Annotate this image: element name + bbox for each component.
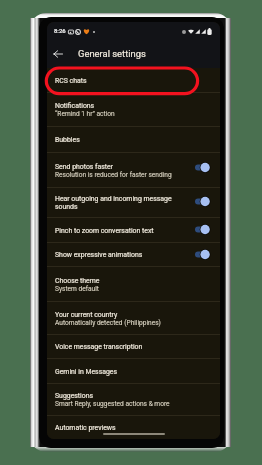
- button[interactable]: Toggle: [195, 249, 210, 260]
- button[interactable]: Pinch to zoom conversation text: [47, 218, 220, 243]
- button[interactable]: Send photos faster: [47, 153, 220, 188]
- button[interactable]: Automatic previews: [47, 416, 220, 439]
- staticText: Gemini in Messages: [55, 368, 118, 376]
- staticText: Bubbles: [55, 136, 80, 144]
- button[interactable]: Your current country: [47, 302, 220, 335]
- staticText: Voice message transcription: [55, 343, 143, 351]
- button[interactable]: RCS chats: [47, 68, 220, 93]
- button[interactable]: Notifications: [47, 93, 220, 127]
- button[interactable]: Show expressive animations: [47, 243, 220, 267]
- button[interactable]: Suggestions: [47, 384, 220, 416]
- button[interactable]: Choose theme: [47, 267, 220, 302]
- staticText: Pinch to zoom conversation text: [55, 227, 154, 235]
- staticText: Hear outgoing and incoming message sound…: [55, 195, 192, 211]
- button[interactable]: Toggle: [195, 162, 210, 173]
- staticText: Show expressive animations: [55, 251, 143, 259]
- staticText: Automatically detected (Philippines): [55, 319, 161, 327]
- button[interactable]: Gemini in Messages: [47, 359, 220, 384]
- staticText: Suggestions: [55, 392, 94, 400]
- staticText: RCS chats: [55, 77, 87, 85]
- staticText: Resolution is reduced for faster sending: [55, 171, 172, 179]
- staticText: System default: [55, 285, 99, 293]
- button[interactable]: Bubbles: [47, 127, 220, 153]
- button[interactable]: Toggle: [195, 224, 210, 235]
- staticText: Automatic previews: [55, 424, 116, 432]
- staticText: Smart Reply, suggested actions & more: [55, 400, 170, 408]
- button[interactable]: Voice message transcription: [47, 335, 220, 359]
- staticText: Your current country: [55, 311, 118, 319]
- staticText: Send photos faster: [55, 163, 114, 171]
- staticText: Choose theme: [55, 277, 100, 285]
- button[interactable]: Hear outgoing and incoming message sound…: [47, 188, 220, 218]
- button[interactable]: Toggle: [195, 196, 210, 207]
- staticText: General settings: [78, 48, 146, 59]
- staticText: 8:26: [54, 28, 66, 35]
- button[interactable]: Back: [48, 44, 68, 64]
- staticText: “Remind 1 hr” action: [55, 110, 115, 118]
- staticText: Notifications: [55, 102, 95, 110]
